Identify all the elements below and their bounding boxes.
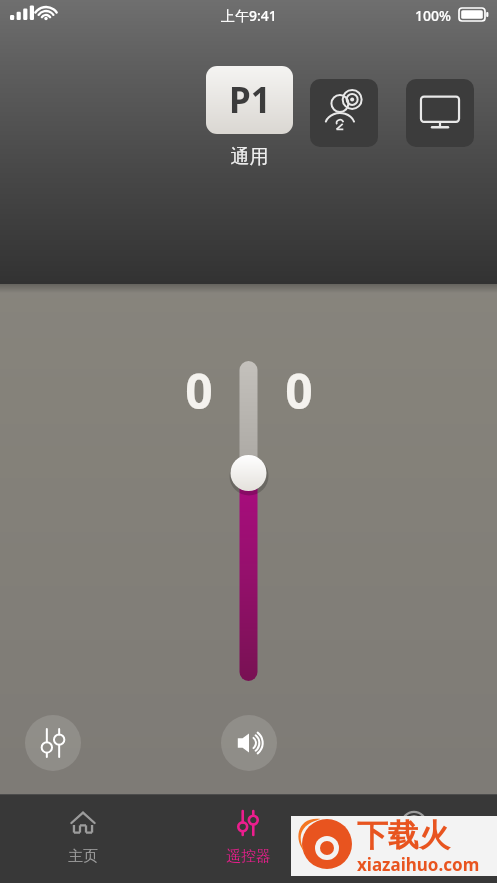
button[interactable]: TV — [406, 79, 474, 147]
staticText: 主页 — [68, 847, 98, 866]
staticText: 0 — [180, 358, 218, 423]
staticText: 100% — [415, 6, 451, 25]
staticText: 0 — [280, 358, 318, 423]
button[interactable]: P1 — [206, 66, 293, 134]
staticText: xiazaihuo.com — [357, 853, 480, 876]
staticText: 通用 — [206, 145, 293, 169]
staticText: P1 — [229, 76, 271, 124]
button[interactable]: Volume — [221, 715, 277, 771]
staticText: 上午9:41 — [221, 6, 277, 25]
staticText: 遥控器 — [226, 847, 271, 866]
button[interactable]: 主页 — [0, 794, 165, 883]
staticText: 设置 — [399, 847, 429, 866]
button[interactable]: Equalizer — [25, 715, 81, 771]
button[interactable]: 遥控器 — [165, 794, 331, 883]
button[interactable]: 设置 — [331, 794, 497, 883]
button[interactable]: Listeners 2 — [310, 79, 378, 147]
staticText: 下载火 — [357, 816, 450, 855]
